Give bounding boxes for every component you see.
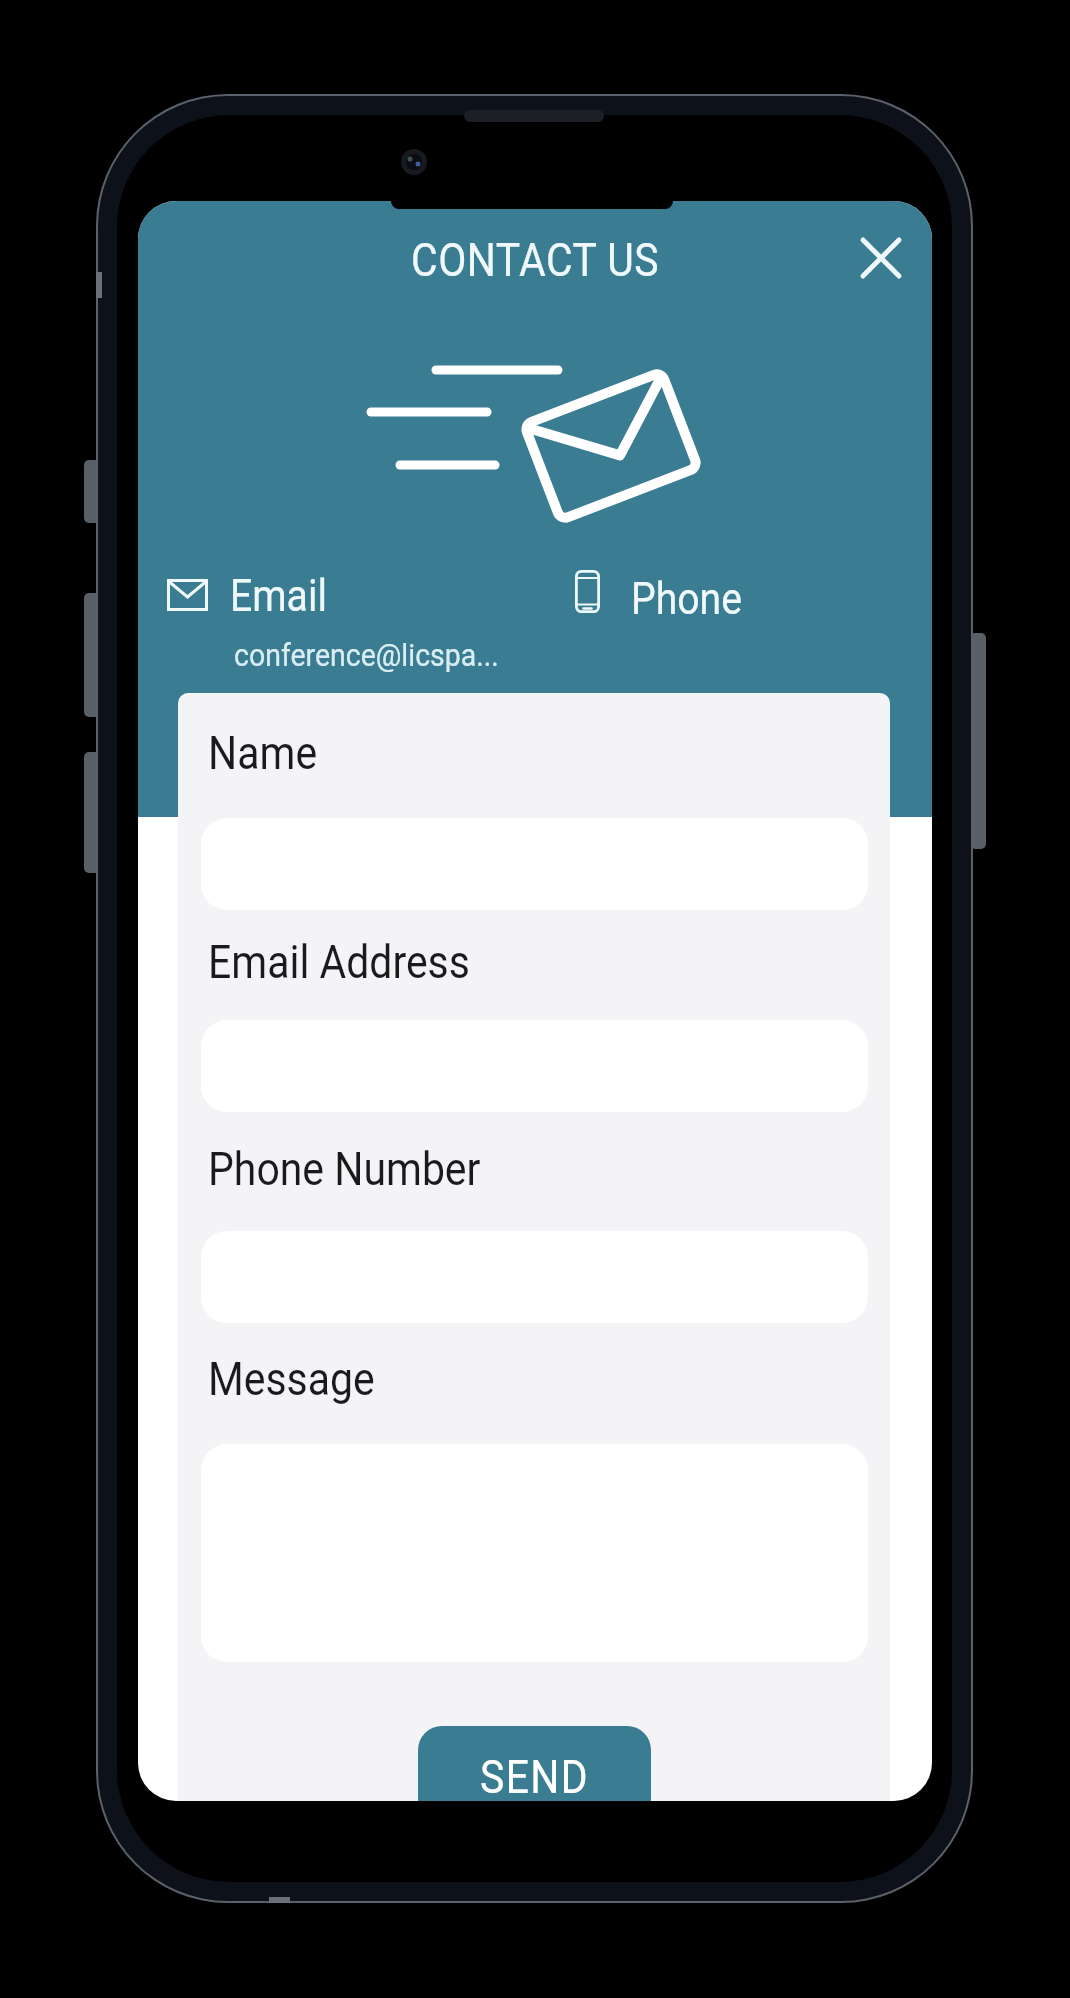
button[interactable]: SEND [418, 1726, 651, 1801]
staticText: Phone Number [208, 1142, 481, 1196]
button[interactable] [851, 228, 911, 288]
staticText: Phone [631, 573, 742, 625]
staticText: Email Address [208, 935, 470, 989]
staticText: Name [208, 726, 317, 780]
staticText: Message [208, 1352, 375, 1406]
button[interactable]: Email [158, 563, 378, 621]
staticText: CONTACT US [182, 233, 888, 287]
staticText: SEND [480, 1750, 589, 1801]
button[interactable]: Phone [565, 559, 765, 621]
staticText: Email [230, 570, 327, 622]
staticText: conference@licspa... [234, 636, 499, 674]
